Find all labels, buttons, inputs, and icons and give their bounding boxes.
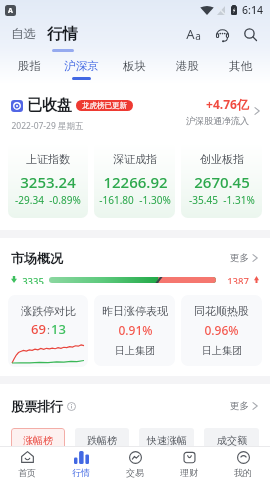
staticText: 同花顺热股 — [194, 304, 249, 318]
button[interactable]: 股指 — [3, 48, 55, 84]
button[interactable]: 其他 — [214, 48, 267, 84]
button[interactable]: 龙虎榜已更新 — [76, 100, 133, 111]
staticText: 交易 — [126, 467, 144, 478]
staticText: A — [186, 25, 195, 43]
staticText: 涨幅榜 — [23, 434, 53, 447]
staticText: 股票排行 — [11, 398, 63, 414]
button[interactable]: 行情 — [47, 22, 78, 46]
staticText: 行情 — [47, 24, 78, 44]
staticText: 日上集团 — [202, 344, 242, 357]
button[interactable]: Search — [240, 24, 260, 44]
staticText: 0.91% — [118, 322, 153, 338]
staticText: 沪深股通净流入 — [186, 115, 249, 126]
staticText: 沪深京 — [64, 59, 99, 73]
staticText: 股指 — [18, 59, 41, 73]
button[interactable]: 行情 — [54, 447, 108, 482]
button[interactable]: 上证指数 — [8, 143, 88, 218]
button[interactable]: 我的 — [216, 447, 270, 482]
staticText: A — [8, 6, 13, 16]
button[interactable]: 跌幅榜 — [75, 428, 129, 452]
staticText: : — [47, 322, 50, 337]
staticText: a — [195, 29, 201, 43]
button[interactable]: 涨幅榜 — [11, 428, 65, 452]
staticText: 3335 — [22, 275, 44, 284]
staticText: 2670.45 — [194, 172, 250, 192]
staticText: 昨日涨停表现 — [102, 304, 168, 318]
button[interactable]: 成交额 — [204, 428, 259, 452]
staticText: 跌幅榜 — [87, 434, 117, 447]
button[interactable]: +4.76亿 — [186, 96, 261, 126]
button[interactable]: 更多 — [230, 252, 259, 264]
staticText: 龙虎榜已更新 — [82, 101, 127, 110]
staticText: 2022-07-29 星期五 — [11, 120, 84, 132]
staticText: 快速涨幅 — [147, 434, 187, 447]
staticText: 3253.24 — [20, 172, 76, 192]
staticText: 上证指数 — [26, 152, 70, 166]
staticText: 我的 — [234, 467, 252, 478]
staticText: 创业板指 — [200, 152, 244, 166]
staticText: -29.34 — [15, 193, 44, 207]
staticText: 已收盘 — [27, 96, 72, 115]
button[interactable]: 快速涨幅 — [139, 428, 194, 452]
staticText: 1387 — [227, 275, 249, 284]
staticText: 行情 — [72, 467, 90, 478]
staticText: 12266.92 — [103, 172, 168, 192]
button[interactable]: Font size — [183, 24, 203, 44]
staticText: +4.76亿 — [206, 96, 249, 112]
staticText: 更多 — [230, 400, 249, 412]
staticText: 理财 — [180, 467, 198, 478]
button[interactable]: 港股 — [161, 48, 214, 84]
button[interactable]: Customer service — [212, 24, 232, 44]
staticText: -35.45 — [189, 193, 218, 207]
button[interactable]: 创业板指 — [181, 143, 262, 218]
staticText: 0.96% — [204, 322, 239, 338]
staticText: -0.89% — [49, 193, 81, 207]
button[interactable]: 首页 — [0, 447, 54, 482]
staticText: 深证成指 — [113, 152, 157, 166]
button[interactable]: 涨跌停对比 — [8, 295, 88, 367]
staticText: 日上集团 — [115, 344, 155, 357]
staticText: 首页 — [18, 467, 36, 478]
button[interactable]: 昨日涨停表现 — [94, 295, 175, 366]
staticText: -1.30% — [139, 193, 171, 207]
button[interactable]: 理财 — [162, 447, 216, 482]
staticText: 成交额 — [217, 434, 247, 447]
staticText: 自选 — [11, 26, 36, 42]
staticText: -161.80 — [99, 193, 134, 207]
staticText: -1.31% — [223, 193, 255, 207]
button[interactable]: 板块 — [108, 48, 161, 84]
staticText: 6:14 — [242, 3, 263, 17]
button[interactable]: 交易 — [108, 447, 162, 482]
staticText: 其他 — [229, 59, 252, 73]
staticText: 13 — [51, 320, 66, 338]
staticText: 市场概况 — [11, 250, 63, 266]
button[interactable]: 自选 — [11, 22, 36, 46]
button[interactable]: 深证成指 — [94, 143, 175, 218]
staticText: 更多 — [230, 252, 249, 264]
button[interactable]: 沪深京 — [55, 48, 108, 84]
staticText: 涨跌停对比 — [21, 304, 76, 318]
staticText: 69 — [31, 320, 46, 338]
button[interactable]: 同花顺热股 — [181, 295, 262, 366]
button[interactable]: 更多 — [230, 400, 259, 412]
staticText: 板块 — [123, 59, 146, 73]
staticText: 港股 — [176, 59, 199, 73]
